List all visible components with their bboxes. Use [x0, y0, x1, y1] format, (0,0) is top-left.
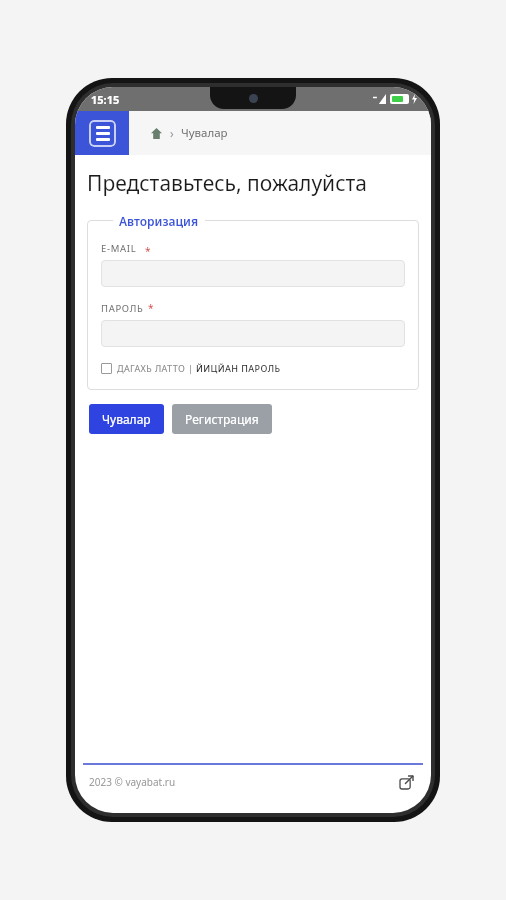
staticText: ПАРОЛЬ	[101, 302, 144, 315]
staticText: ДАГАХЬ ЛАТТО	[117, 362, 188, 374]
staticText: *	[148, 301, 154, 315]
staticText: E-MAIL	[101, 242, 137, 255]
button[interactable]	[101, 320, 405, 347]
button[interactable]: Регистрация	[172, 404, 272, 434]
button[interactable]: ДАГАХЬ ЛАТТО	[101, 362, 281, 374]
staticText: *	[145, 244, 151, 258]
button[interactable]: Menu	[75, 111, 129, 155]
staticText: ›	[170, 125, 174, 141]
button[interactable]: External link	[395, 771, 417, 793]
button[interactable]	[101, 260, 405, 287]
staticText: Регистрация	[185, 411, 259, 427]
staticText: Чувалар	[181, 125, 228, 141]
staticText: Представьтесь, пожалуйста	[87, 169, 367, 198]
staticText: Авторизация	[119, 213, 199, 229]
staticText: 15:15	[91, 92, 120, 107]
button[interactable]: Чувалар	[89, 404, 164, 434]
staticText: 2023 © vayabat.ru	[89, 775, 176, 789]
staticText: |	[188, 362, 196, 374]
staticText: ЙИЦЙАН ПАРОЛЬ	[196, 362, 281, 374]
staticText: Чувалар	[102, 411, 151, 427]
